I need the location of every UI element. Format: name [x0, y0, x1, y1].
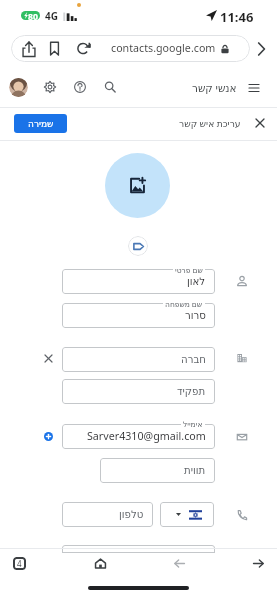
button[interactable]: Add photo [105, 153, 170, 218]
button[interactable]: Name [235, 274, 248, 287]
staticText: אימייל [183, 420, 203, 429]
button[interactable]: Settings [43, 80, 57, 94]
button[interactable]: Main menu [245, 79, 263, 97]
button[interactable]: Email [235, 430, 248, 443]
button[interactable]: Add email [43, 431, 54, 442]
button[interactable]: Label [128, 236, 148, 256]
button[interactable]: Bookmark [46, 40, 63, 57]
button[interactable]: Remove company [42, 352, 55, 365]
staticText: שמירה [28, 119, 54, 129]
button[interactable]: Close [252, 115, 268, 131]
button[interactable]: טלפון [62, 502, 153, 527]
staticText: contacts.google.com [111, 41, 216, 56]
button[interactable]: Reload [75, 40, 92, 57]
button[interactable]: Search [103, 80, 117, 94]
button[interactable]: Forward [252, 557, 264, 569]
button[interactable]: Share [11, 35, 250, 62]
staticText: אנשי קשר [192, 81, 237, 95]
staticText: Sarver4310@gmail.com [87, 429, 206, 444]
staticText: 11:46 [220, 8, 254, 26]
button[interactable]: Help [73, 80, 87, 94]
button[interactable]: Home [94, 557, 106, 569]
staticText: עריכת איש קשר [179, 117, 241, 130]
button[interactable]: Company [235, 351, 248, 364]
staticText: 80 [28, 11, 38, 20]
button[interactable]: Account [9, 78, 28, 97]
staticText: טלפון [119, 509, 144, 521]
staticText: תפקיד [177, 386, 206, 398]
button[interactable]: שמירה [14, 114, 67, 133]
button[interactable]: תווית [100, 458, 215, 483]
staticText: תווית [184, 465, 206, 477]
button[interactable]: Phone [235, 508, 248, 521]
button[interactable]: Country code [160, 502, 214, 527]
button[interactable]: More options [253, 41, 269, 57]
staticText: שם פרטי [175, 265, 203, 275]
button[interactable]: Share [20, 40, 38, 58]
staticText: 4 [17, 558, 22, 569]
staticText: סרור [185, 310, 206, 322]
button[interactable]: סרור [62, 303, 215, 328]
staticText: חברה [181, 354, 206, 366]
staticText: שם משפחה [165, 299, 203, 309]
button[interactable]: לאון [62, 269, 215, 294]
button[interactable]: Back [173, 557, 185, 569]
button[interactable]: תפקיד [62, 379, 215, 404]
staticText: 4G [45, 9, 58, 23]
button[interactable]: חברה [62, 347, 215, 372]
button[interactable]: Sarver4310@gmail.com [62, 424, 215, 449]
button[interactable]: Tabs [13, 557, 26, 570]
staticText: לאון [187, 276, 206, 288]
